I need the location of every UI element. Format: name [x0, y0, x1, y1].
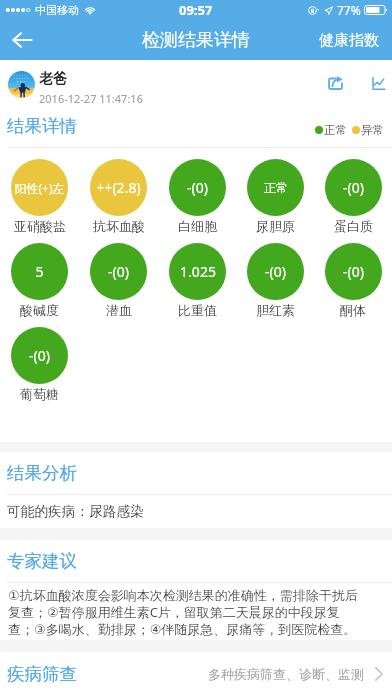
staticText: 白细胞	[178, 218, 217, 234]
staticText: 抗坏血酸	[93, 218, 145, 234]
button[interactable]: 1.025	[158, 243, 236, 318]
staticText: 老爸	[39, 70, 67, 88]
staticText: -(0)	[343, 262, 364, 281]
button[interactable]: ++(2.8)	[79, 159, 158, 234]
staticText: ①抗坏血酸浓度会影响本次检测结果的准确性，需排除干扰后复查；②暂停服用维生素C片…	[8, 587, 363, 638]
button[interactable]: 5	[0, 243, 79, 318]
staticText: -(0)	[29, 346, 50, 365]
staticText: 异常	[361, 123, 384, 137]
staticText: 5	[35, 262, 44, 281]
button[interactable]: -(0)	[314, 159, 392, 234]
staticText: 酸碱度	[20, 302, 59, 318]
staticText: 正常	[264, 180, 288, 195]
button[interactable]: Trend chart	[367, 72, 389, 94]
staticText: -(0)	[343, 178, 364, 197]
button[interactable]: 阳性(+)左	[0, 159, 79, 234]
staticText: 1.025	[180, 262, 216, 281]
staticText: 潜血	[106, 302, 132, 318]
staticText: 葡萄糖	[20, 386, 59, 402]
button[interactable]: -(0)	[158, 159, 236, 234]
staticText: 胆红素	[256, 302, 295, 318]
button[interactable]: 疾病筛查	[0, 652, 392, 695]
staticText: 尿胆原	[256, 218, 295, 234]
staticText: -(0)	[187, 178, 208, 197]
staticText: 77%	[337, 2, 361, 18]
staticText: 专家建议	[7, 550, 77, 572]
staticText: 酮体	[340, 302, 366, 318]
staticText: 结果详情	[7, 115, 77, 137]
staticText: 结果分析	[7, 462, 77, 484]
button[interactable]: -(0)	[0, 327, 79, 402]
button[interactable]: -(0)	[236, 243, 314, 318]
button[interactable]: -(0)	[314, 243, 392, 318]
staticText: 中国移动	[35, 3, 79, 17]
staticText: 多种疾病筛查、诊断、监测	[208, 666, 364, 682]
staticText: ++(2.8)	[96, 178, 141, 197]
staticText: 正常	[324, 123, 347, 137]
button[interactable]: Back	[0, 20, 44, 60]
button[interactable]: 正常	[236, 159, 314, 234]
button[interactable]: 健康指数	[306, 20, 392, 60]
staticText: 阳性(+)左	[14, 180, 65, 196]
staticText: 亚硝酸盐	[14, 218, 66, 234]
button[interactable]: Share	[323, 70, 347, 94]
staticText: 09:57	[179, 1, 213, 19]
staticText: 健康指数	[319, 31, 379, 50]
button[interactable]: -(0)	[79, 243, 158, 318]
staticText: 2016-12-27 11:47:16	[39, 91, 143, 106]
staticText: 可能的疾病：尿路感染	[7, 503, 144, 520]
staticText: -(0)	[108, 262, 129, 281]
staticText: 比重值	[178, 302, 217, 318]
staticText: 检测结果详情	[142, 29, 250, 52]
staticText: -(0)	[265, 262, 286, 281]
staticText: 蛋白质	[334, 218, 373, 234]
staticText: 疾病筛查	[7, 663, 77, 685]
